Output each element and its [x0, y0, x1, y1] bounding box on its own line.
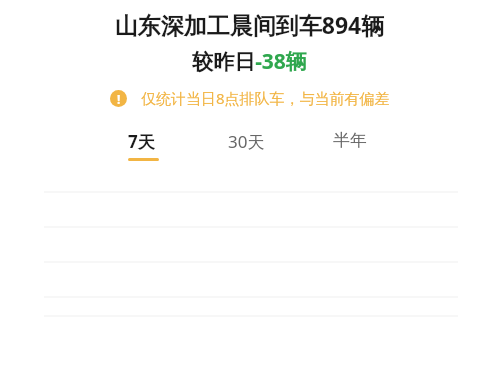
staticText: 半年 [333, 130, 367, 151]
button[interactable]: 半年 [333, 130, 433, 156]
staticText: 7天 [128, 130, 155, 153]
button[interactable]: 30天 [228, 130, 333, 158]
staticText: 仅统计当日8点排队车，与当前有偏差 [141, 88, 390, 108]
staticText: ! [117, 91, 121, 107]
button[interactable]: 7天 [128, 130, 228, 161]
staticText: 较昨日-38辆 [0, 47, 499, 76]
staticText: 30天 [228, 130, 265, 153]
staticText: 山东深加工晨间到车894辆 [0, 9, 499, 40]
